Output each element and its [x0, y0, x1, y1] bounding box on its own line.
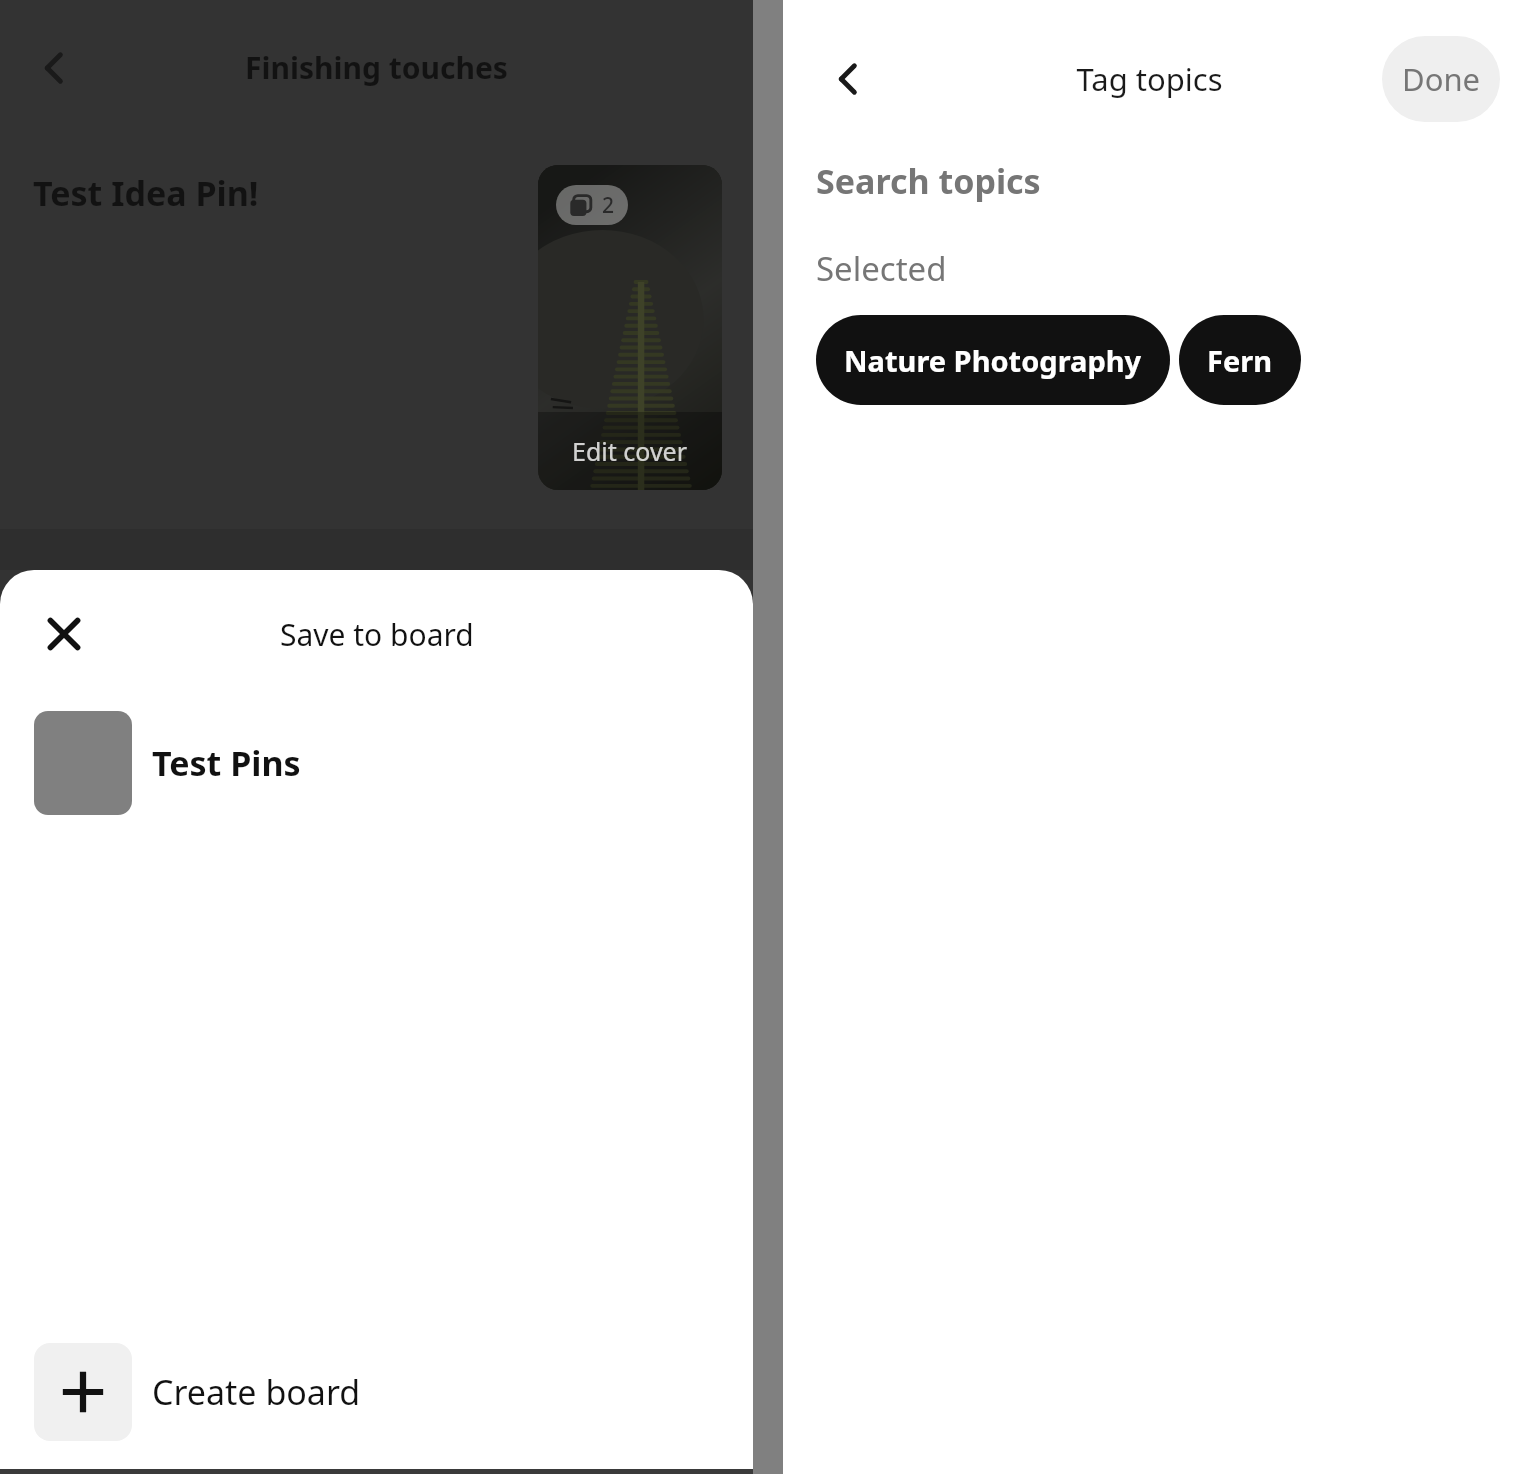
staticText: Create board — [152, 1369, 361, 1415]
staticText: Done — [1402, 58, 1481, 100]
staticText: Selected — [816, 246, 947, 291]
staticText: Fern — [1207, 341, 1273, 380]
button[interactable]: Nature Photography — [816, 315, 1170, 405]
staticText: Nature Photography — [844, 341, 1142, 380]
staticText: Test Idea Pin! — [33, 170, 259, 216]
button[interactable]: Back — [18, 32, 90, 104]
staticText: Tag topics — [1076, 58, 1223, 100]
staticText: Test Pins — [152, 740, 301, 786]
staticText: Save to board — [280, 614, 474, 655]
button[interactable]: Create board — [0, 1336, 753, 1448]
staticText: Finishing touches — [245, 47, 508, 88]
button[interactable]: Close — [28, 598, 100, 670]
staticText: Search topics — [816, 158, 1041, 204]
button[interactable]: Test Pins — [0, 698, 753, 828]
button[interactable]: Back — [811, 42, 885, 116]
staticText: Edit cover — [572, 434, 688, 468]
button[interactable]: 2 — [538, 165, 722, 490]
button[interactable]: Done — [1382, 36, 1500, 122]
button[interactable]: Fern — [1179, 315, 1301, 405]
staticText: 2 — [602, 191, 615, 220]
